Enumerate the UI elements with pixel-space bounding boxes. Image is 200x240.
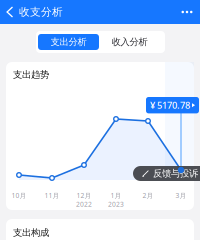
button[interactable]: Back <box>0 0 19 24</box>
staticText: 10月 <box>11 191 26 200</box>
button[interactable]: More options <box>174 0 200 24</box>
staticText: 12月 <box>76 191 91 200</box>
staticText: 支出趋势 <box>13 69 49 80</box>
button[interactable]: 反馈与投诉 <box>133 166 200 181</box>
staticText: 反馈与投诉 <box>153 168 198 179</box>
staticText: 收支分析 <box>19 5 63 18</box>
staticText: 支出分析 <box>50 36 86 48</box>
button[interactable]: 收入分析 <box>99 34 160 50</box>
button[interactable]: 支出分析 <box>38 34 99 50</box>
staticText: ¥ 5170.78 <box>150 99 190 111</box>
staticText: 2022 <box>76 200 92 209</box>
staticText: 1月 <box>110 191 121 200</box>
staticText: 2月 <box>142 191 153 200</box>
staticText: 3月 <box>175 191 186 200</box>
staticText: 2023 <box>108 200 124 209</box>
staticText: 11月 <box>44 191 59 200</box>
staticText: 支出构成 <box>13 227 49 238</box>
staticText: 收入分析 <box>111 36 147 48</box>
